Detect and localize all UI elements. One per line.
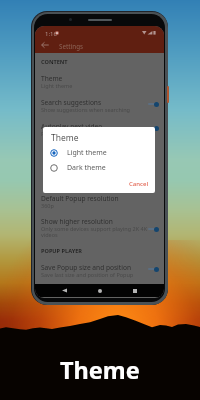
staticText: Theme: [60, 354, 140, 386]
staticText: Theme: [51, 132, 79, 144]
staticText: Settings: [59, 42, 84, 50]
button[interactable]: Default Popup resolution: [35, 193, 164, 214]
button[interactable]: Back: [38, 38, 52, 52]
button[interactable]: Search suggestions: [35, 97, 164, 118]
button[interactable]: Theme: [35, 73, 164, 94]
staticText: Cancel: [129, 180, 149, 188]
button[interactable]: Dark theme: [43, 160, 155, 175]
button[interactable]: Light theme: [43, 145, 155, 160]
button[interactable]: Save Popup size and position: [35, 262, 164, 283]
staticText: Autoplay next video: [41, 122, 103, 131]
button[interactable]: Back: [57, 284, 71, 297]
staticText: Light theme: [67, 148, 107, 158]
staticText: videos: [41, 231, 58, 238]
staticText: CONTENT: [41, 58, 68, 66]
staticText: Theme: [41, 74, 63, 83]
staticText: Play next related video: [41, 130, 100, 137]
staticText: Show suggestions when searching: [41, 106, 130, 113]
button[interactable]: Autoplay next video: [35, 121, 164, 142]
button[interactable]: Recent apps: [128, 284, 142, 297]
button[interactable]: Cancel: [128, 178, 150, 189]
staticText: Light theme: [41, 82, 73, 89]
staticText: Only some devices support playing 2K 4K: [41, 225, 148, 232]
staticText: Show higher resolution: [41, 217, 113, 226]
staticText: 1:16: [45, 30, 57, 38]
staticText: Default Popup resolution: [41, 194, 119, 203]
staticText: Search suggestions: [41, 98, 102, 107]
staticText: Save Popup size and position: [41, 263, 131, 272]
button[interactable]: Show higher resolution: [35, 216, 164, 244]
button[interactable]: Home: [93, 284, 107, 297]
staticText: Save last size and position of Popup: [41, 271, 134, 278]
staticText: POPUP PLAYER: [41, 247, 82, 255]
staticText: Dark theme: [67, 163, 106, 173]
staticText: 360p: [41, 202, 54, 209]
